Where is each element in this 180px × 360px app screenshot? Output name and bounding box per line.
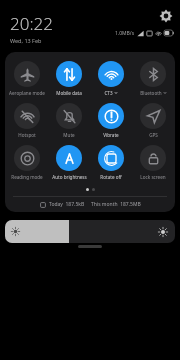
staticText: Aeroplane mode bbox=[9, 90, 45, 96]
button[interactable]: Reading mode bbox=[7, 145, 47, 180]
button[interactable]: Today 187.5kB bbox=[5, 201, 175, 208]
staticText: Bluetooth bbox=[140, 90, 162, 96]
button[interactable]: Settings bbox=[159, 9, 173, 23]
staticText: Mobile data bbox=[56, 90, 82, 96]
button[interactable]: Bluetooth bbox=[133, 61, 173, 96]
staticText: 1.0MB/s bbox=[115, 30, 135, 37]
button[interactable]: GPS bbox=[133, 103, 173, 138]
staticText: Hotspot bbox=[18, 132, 36, 138]
button[interactable]: Mute bbox=[49, 103, 89, 138]
button[interactable]: Aeroplane mode bbox=[7, 61, 47, 96]
button[interactable]: Auto brightness bbox=[49, 145, 89, 180]
staticText: Vibrate bbox=[103, 132, 119, 138]
staticText: Mute bbox=[63, 132, 75, 138]
button[interactable]: Brightness bbox=[5, 220, 175, 243]
button[interactable]: Vibrate bbox=[91, 103, 131, 138]
staticText: Lock screen bbox=[140, 174, 166, 180]
staticText: This month 187.5MB bbox=[91, 201, 141, 208]
button[interactable]: Rotate off bbox=[91, 145, 131, 180]
staticText: GPS bbox=[149, 132, 158, 138]
staticText: Today 187.5kB bbox=[49, 201, 85, 208]
staticText: Rotate off bbox=[100, 174, 122, 180]
staticText: Wed, 13 Feb bbox=[10, 37, 42, 44]
staticText: CT3 bbox=[104, 90, 113, 96]
staticText: Auto brightness bbox=[52, 174, 87, 180]
button[interactable]: Mobile data bbox=[49, 61, 89, 96]
button[interactable]: Hotspot bbox=[7, 103, 47, 138]
button[interactable]: Lock screen bbox=[133, 145, 173, 180]
staticText: Reading mode bbox=[11, 174, 43, 180]
staticText: 20:22 bbox=[10, 12, 53, 35]
button[interactable]: CT3 bbox=[91, 61, 131, 96]
